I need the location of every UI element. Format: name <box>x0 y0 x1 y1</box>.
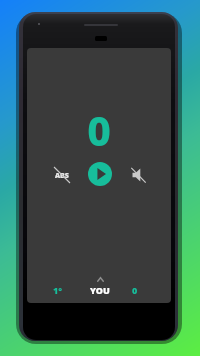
button[interactable]: Play <box>88 162 112 186</box>
staticText: 1° <box>53 284 63 296</box>
button[interactable]: Sound muted <box>124 161 152 189</box>
button[interactable]: 0 <box>117 276 153 302</box>
button[interactable]: YOU <box>80 272 120 300</box>
button[interactable]: 1° <box>40 276 76 302</box>
staticText: YOU <box>90 284 110 296</box>
staticText: 0 <box>87 102 111 148</box>
button[interactable]: ABS disabled <box>48 161 76 189</box>
staticText: ABS <box>55 171 69 181</box>
staticText: 0 <box>132 284 138 296</box>
